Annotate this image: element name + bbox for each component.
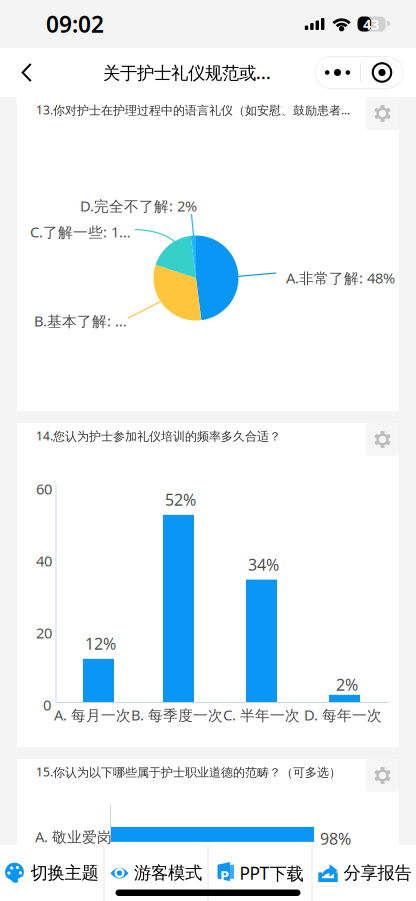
- staticText: 09:02: [46, 9, 104, 39]
- staticText: 20: [36, 623, 52, 642]
- button[interactable]: 游客模式: [104, 845, 207, 901]
- button[interactable]: 切换主题: [0, 845, 103, 901]
- staticText: 34%: [248, 554, 279, 575]
- staticText: 98%: [320, 828, 351, 849]
- staticText: C.了解一些: 1…: [30, 222, 131, 242]
- staticText: 切换主题: [30, 862, 98, 884]
- staticText: 60: [36, 479, 52, 498]
- button[interactable]: Chart options: [366, 759, 399, 792]
- staticText: D.完全不了解: 2%: [80, 196, 197, 216]
- button[interactable]: Chart options: [366, 97, 399, 130]
- staticText: PPT下载: [239, 861, 303, 884]
- button[interactable]: Chart options: [366, 423, 399, 456]
- staticText: 52%: [165, 489, 196, 510]
- staticText: 0: [43, 695, 51, 714]
- staticText: 15.你认为以下哪些属于护士职业道德的范畴？（可多选）: [36, 764, 341, 780]
- staticText: A. 敬业爱岗: [35, 827, 112, 846]
- staticText: 14.您认为护士参加礼仪培训的频率多久合适？: [36, 428, 281, 444]
- button[interactable]: More options: [309, 49, 409, 95]
- staticText: 40: [36, 551, 52, 570]
- staticText: 2%: [336, 674, 358, 695]
- staticText: 43: [363, 14, 379, 34]
- button[interactable]: Back: [6, 49, 48, 95]
- staticText: 13.你对护士在护理过程中的语言礼仪（如安慰、鼓励患者）的了: [36, 102, 358, 118]
- staticText: 分享报告: [343, 862, 411, 884]
- staticText: A.非常了解: 48%: [286, 268, 395, 288]
- staticText: 游客模式: [134, 862, 202, 884]
- button[interactable]: P: [208, 845, 311, 901]
- staticText: 12%: [85, 633, 116, 654]
- staticText: P: [220, 866, 229, 885]
- staticText: B.基本了解: …: [34, 311, 127, 331]
- staticText: A. 每月一次B. 每季度一次C. 半年一次 D. 每年一次: [54, 705, 382, 725]
- button[interactable]: 分享报告: [312, 845, 416, 901]
- staticText: 关于护士礼仪规范或...: [103, 61, 271, 84]
